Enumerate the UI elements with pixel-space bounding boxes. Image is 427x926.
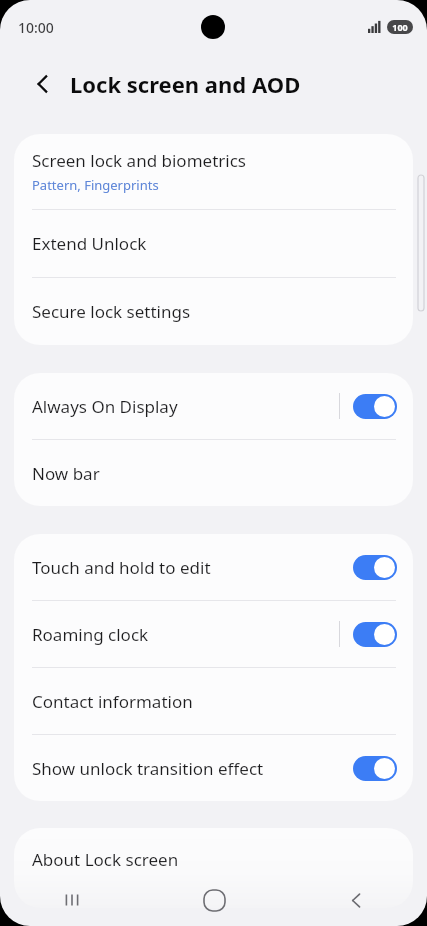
staticText: Secure lock settings — [32, 300, 191, 323]
button[interactable]: Show unlock transition effect — [14, 735, 413, 801]
button[interactable]: Toggle on — [353, 555, 397, 580]
button[interactable]: Screen lock and biometrics — [14, 134, 413, 209]
staticText: Show unlock transition effect — [32, 757, 264, 780]
staticText: Always On Display — [32, 395, 178, 418]
staticText: Roaming clock — [32, 623, 149, 646]
staticText: Pattern, Fingerprints — [32, 176, 159, 194]
staticText: 100 — [392, 21, 408, 33]
button[interactable]: Toggle on — [353, 394, 397, 419]
button[interactable]: Secure lock settings — [14, 278, 413, 345]
button[interactable]: Roaming clock — [14, 601, 413, 667]
button[interactable]: Extend Unlock — [14, 210, 413, 277]
staticText: 10:00 — [18, 18, 54, 37]
button[interactable]: Back — [22, 63, 64, 105]
button[interactable]: Contact information — [14, 668, 413, 734]
button[interactable]: Toggle on — [353, 756, 397, 781]
staticText: Lock screen and AOD — [70, 69, 301, 99]
button[interactable]: Toggle on — [353, 622, 397, 647]
button[interactable]: Home — [143, 874, 285, 926]
staticText: About Lock screen — [32, 848, 179, 871]
button[interactable]: About Lock screen — [14, 828, 413, 908]
button[interactable]: Always On Display — [14, 373, 413, 439]
staticText: Contact information — [32, 690, 193, 713]
staticText: Touch and hold to edit — [32, 556, 211, 579]
staticText: Now bar — [32, 462, 100, 485]
staticText: Screen lock and biometrics — [32, 149, 246, 172]
button[interactable]: Touch and hold to edit — [14, 534, 413, 600]
button[interactable]: Now bar — [14, 440, 413, 506]
button[interactable]: Back — [285, 874, 427, 926]
button[interactable]: Recent apps — [0, 874, 143, 926]
staticText: Extend Unlock — [32, 232, 147, 255]
